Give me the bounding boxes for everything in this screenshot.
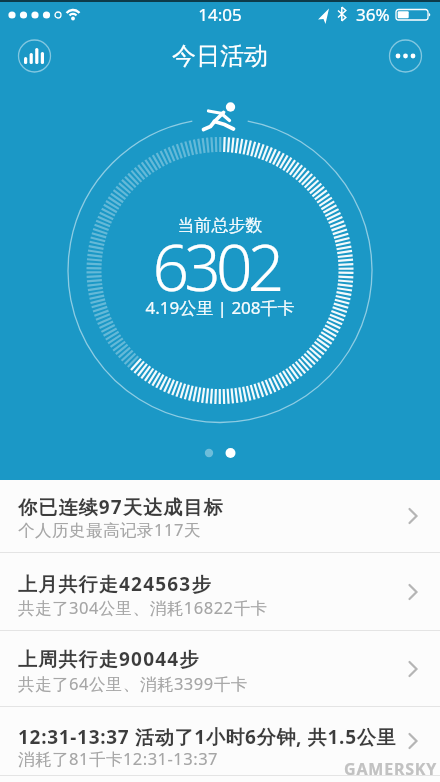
staticText: 当前总步数 xyxy=(0,215,440,236)
staticText: 4.19公里 | 208千卡 xyxy=(0,296,440,319)
button[interactable]: 上周共行走90044步 xyxy=(0,631,440,706)
button[interactable]: 上月共行走424563步 xyxy=(0,553,440,630)
staticText: 共走了304公里、消耗16822千卡 xyxy=(18,596,268,619)
staticText: 36% xyxy=(356,3,390,26)
staticText: 6302 xyxy=(0,223,436,310)
button[interactable] xyxy=(18,40,51,73)
staticText: 你已连续97天达成目标 xyxy=(18,494,224,520)
button[interactable]: 你已连续97天达成目标 xyxy=(0,480,440,552)
staticText: GAMERSKY xyxy=(344,758,438,780)
staticText: 今日活动 xyxy=(0,41,440,71)
button[interactable] xyxy=(389,40,422,73)
staticText: 个人历史最高记录117天 xyxy=(18,518,201,541)
staticText: 消耗了81千卡12:31-13:37 xyxy=(18,747,219,770)
staticText: 上周共行走90044步 xyxy=(18,646,200,672)
staticText: 共走了64公里、消耗3399千卡 xyxy=(18,672,248,695)
staticText: 上月共行走424563步 xyxy=(18,571,212,597)
staticText: 12:31-13:37 活动了1小时6分钟, 共1.5公里 xyxy=(18,724,397,750)
staticText: 14:05 xyxy=(0,3,440,26)
button[interactable]: 12:31-13:37 活动了1小时6分钟, 共1.5公里 xyxy=(0,707,440,775)
